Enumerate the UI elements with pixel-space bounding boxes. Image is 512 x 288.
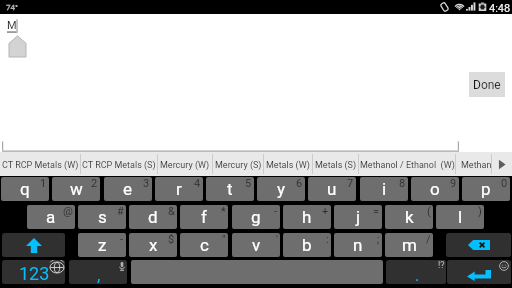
staticText: g xyxy=(251,207,261,227)
button[interactable]: t xyxy=(206,177,254,201)
staticText: i xyxy=(382,179,387,199)
staticText: c xyxy=(200,235,209,255)
button[interactable]: CT RCP Metals (W) xyxy=(0,152,80,176)
staticText: ) xyxy=(478,205,482,218)
button[interactable]: b xyxy=(283,233,331,257)
staticText: Mercury (S) xyxy=(215,160,262,171)
button[interactable]: Methanol / Eth xyxy=(456,152,491,176)
button[interactable]: a xyxy=(27,205,75,229)
button[interactable]: j xyxy=(334,205,382,229)
button[interactable]: Symbols xyxy=(2,260,65,284)
button[interactable]: Shift xyxy=(2,233,65,257)
button[interactable]: m xyxy=(385,233,433,257)
staticText: v xyxy=(252,235,261,255)
staticText: Metals (W) xyxy=(266,160,310,171)
button[interactable]: p xyxy=(462,177,510,201)
staticText: $ xyxy=(168,233,175,246)
button[interactable]: Mercury (W) xyxy=(158,152,212,176)
staticText: r xyxy=(176,179,182,199)
button[interactable]: Methanol / Ethanol (W) xyxy=(359,152,455,176)
staticText: = xyxy=(373,205,380,218)
button[interactable]: z xyxy=(78,233,126,257)
staticText: M xyxy=(7,19,17,32)
staticText: + xyxy=(322,205,329,218)
button[interactable]: h xyxy=(283,205,331,229)
staticText: Methanol / Ethanol (W) xyxy=(360,160,455,171)
staticText: CT RCP Metals (W) xyxy=(2,160,79,171)
staticText: Done xyxy=(473,78,501,92)
staticText: k xyxy=(405,207,414,227)
staticText: , xyxy=(97,265,101,284)
staticText: 3 xyxy=(143,177,150,190)
button[interactable]: d xyxy=(129,205,177,229)
staticText: j xyxy=(356,207,361,227)
staticText: 8 xyxy=(399,177,406,190)
button[interactable]: o xyxy=(411,177,459,201)
staticText: z xyxy=(98,235,107,255)
button[interactable]: Comma xyxy=(69,260,127,284)
button[interactable]: i xyxy=(360,177,408,201)
button[interactable]: n xyxy=(334,233,382,257)
staticText: q xyxy=(20,179,30,199)
staticText: n xyxy=(353,235,363,255)
staticText: 74° xyxy=(6,3,18,12)
staticText: 123 xyxy=(19,263,50,284)
staticText: ; xyxy=(377,233,380,246)
button[interactable]: e xyxy=(104,177,152,201)
button[interactable]: More suggestions xyxy=(492,152,512,176)
staticText: 7 xyxy=(347,177,354,190)
staticText: Methanol / Eth xyxy=(461,160,491,171)
staticText: f xyxy=(201,207,207,227)
staticText: s xyxy=(98,207,107,227)
staticText: o xyxy=(430,179,440,199)
button[interactable]: y xyxy=(257,177,305,201)
staticText: a xyxy=(46,207,56,227)
staticText: 1 xyxy=(40,177,47,190)
staticText: 0 xyxy=(501,177,508,190)
staticText: b xyxy=(302,235,312,255)
button[interactable]: g xyxy=(232,205,280,229)
staticText: h xyxy=(302,207,312,227)
staticText: 9 xyxy=(450,177,457,190)
button[interactable]: Enter xyxy=(447,260,511,284)
button[interactable]: q xyxy=(1,177,49,201)
button[interactable]: f xyxy=(180,205,228,229)
button[interactable]: CT RCP Metals (S) xyxy=(81,152,157,176)
staticText: # xyxy=(117,205,124,218)
button[interactable]: Mercury (S) xyxy=(213,152,263,176)
button[interactable]: k xyxy=(385,205,433,229)
staticText: - xyxy=(120,233,124,246)
button[interactable]: l xyxy=(436,205,484,229)
staticText: m xyxy=(402,235,417,255)
staticText: 5 xyxy=(245,177,252,190)
button[interactable]: s xyxy=(78,205,126,229)
staticText: " xyxy=(222,233,226,246)
button[interactable]: Period xyxy=(386,260,446,284)
staticText: d xyxy=(148,207,158,227)
button[interactable]: v xyxy=(232,233,280,257)
staticText: . xyxy=(415,265,420,284)
staticText: e xyxy=(123,179,133,199)
staticText: ' xyxy=(276,233,278,246)
staticText: @ xyxy=(63,205,73,218)
button[interactable]: c xyxy=(180,233,228,257)
button[interactable]: Done xyxy=(469,72,505,97)
staticText: : xyxy=(326,233,329,246)
button[interactable]: Delete xyxy=(446,233,511,257)
staticText: / xyxy=(426,233,431,246)
staticText: x xyxy=(149,235,158,255)
staticText: !? xyxy=(438,260,445,271)
button[interactable]: u xyxy=(308,177,356,201)
staticText: p xyxy=(481,179,491,199)
staticText: u xyxy=(327,179,337,199)
staticText: ( xyxy=(427,205,431,218)
button[interactable]: Metals (S) xyxy=(313,152,358,176)
button[interactable]: r xyxy=(155,177,203,201)
staticText: * xyxy=(221,205,226,218)
button[interactable]: w xyxy=(52,177,100,201)
button[interactable]: x xyxy=(129,233,177,257)
staticText: t xyxy=(227,179,233,199)
staticText: w xyxy=(70,179,83,199)
button[interactable]: Metals (W) xyxy=(264,152,312,176)
